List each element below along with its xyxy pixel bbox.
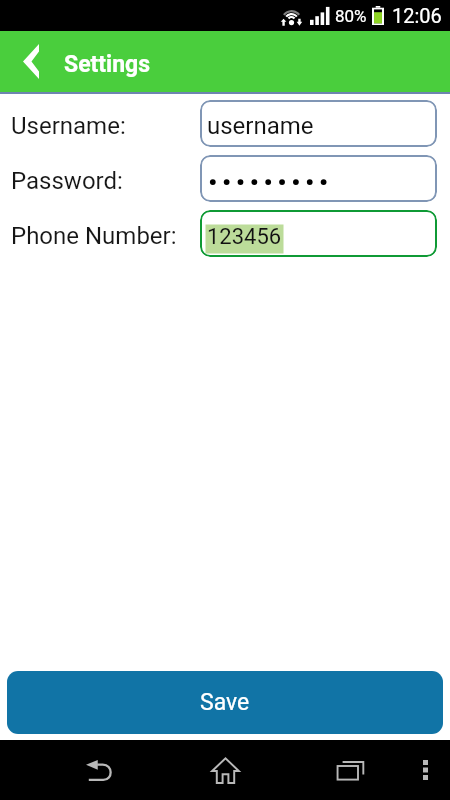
button[interactable]: username (200, 100, 437, 147)
button[interactable]: Recent apps (288, 740, 413, 800)
button[interactable]: Save (7, 671, 443, 734)
staticText: Settings (64, 51, 151, 78)
button[interactable]: Back (0, 31, 62, 92)
button[interactable]: Home (162, 740, 288, 800)
button[interactable]: 123456 (200, 210, 437, 257)
button[interactable]: More options (407, 740, 444, 800)
staticText: Save (200, 689, 250, 716)
button[interactable] (200, 155, 437, 202)
staticText: username (207, 112, 314, 140)
staticText: Password: (11, 167, 123, 195)
staticText: 12:06 (392, 4, 442, 27)
staticText: 80% (335, 6, 367, 26)
button[interactable]: Back (37, 740, 162, 800)
staticText: Phone Number: (11, 222, 177, 250)
staticText: Username: (11, 112, 126, 140)
staticText: 123456 (207, 224, 282, 250)
